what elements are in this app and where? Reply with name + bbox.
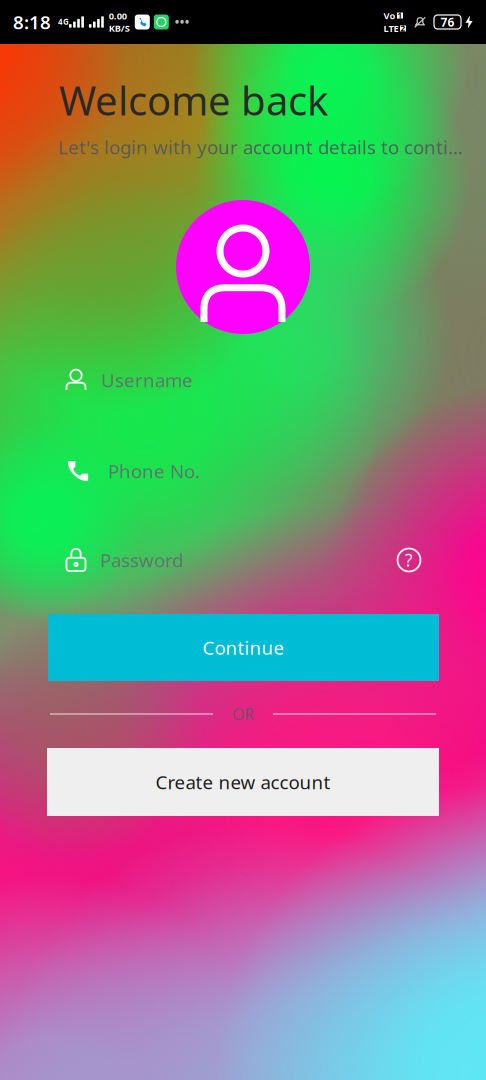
- staticText: 4G: [58, 16, 69, 27]
- staticText: Phone No.: [108, 459, 200, 483]
- staticText: 0.00: [109, 10, 127, 22]
- staticText: Username: [101, 368, 193, 392]
- button[interactable]: Create new account: [47, 748, 439, 816]
- staticText: Welcome back: [59, 73, 328, 126]
- staticText: LTE: [383, 22, 398, 35]
- staticText: Vo: [383, 9, 395, 22]
- staticText: Password: [100, 548, 183, 572]
- staticText: 1: [397, 10, 402, 21]
- staticText: Create new account: [155, 770, 330, 794]
- staticText: ?: [405, 548, 413, 571]
- staticText: Continue: [202, 635, 284, 660]
- staticText: OR: [232, 703, 254, 725]
- staticText: •••: [175, 14, 190, 30]
- staticText: KB/S: [109, 22, 130, 34]
- staticText: 8:18: [13, 10, 51, 34]
- staticText: 76: [440, 14, 454, 30]
- staticText: 2: [400, 23, 405, 34]
- button[interactable]: Continue: [48, 614, 439, 681]
- staticText: Let's login with your account details to…: [58, 135, 463, 159]
